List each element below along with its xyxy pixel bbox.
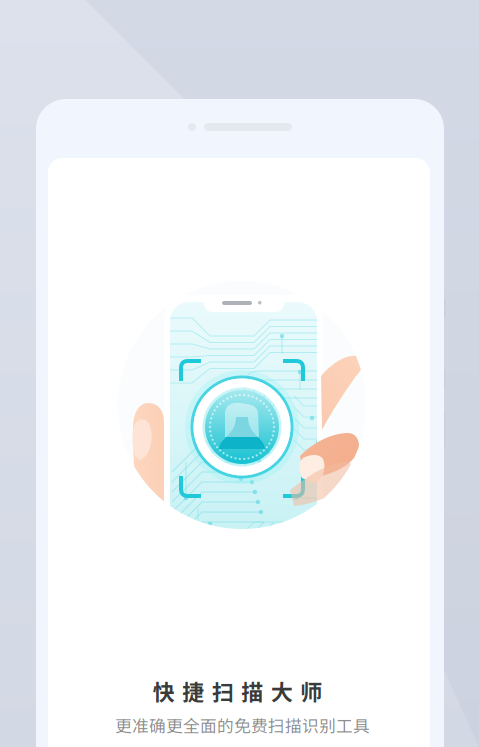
staticText: 更准确更全面的免费扫描识别工具 <box>115 713 370 737</box>
staticText: 快捷扫描大师 <box>153 675 322 707</box>
